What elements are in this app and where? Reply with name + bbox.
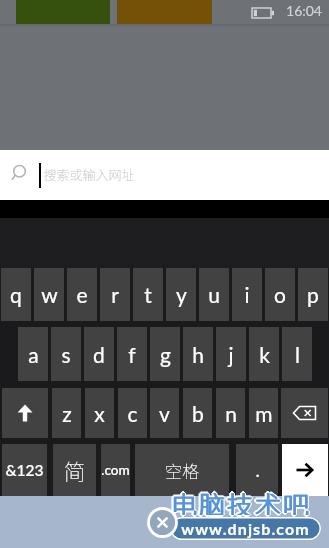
staticText: b (192, 401, 204, 426)
staticText: 电脑技术吧 (168, 485, 309, 515)
staticText: 电脑技术吧 (171, 484, 312, 514)
staticText: f (128, 342, 136, 367)
staticText: 电脑技术吧 (170, 485, 311, 515)
staticText: s (61, 342, 71, 367)
staticText: www.dnjsb.com (181, 519, 310, 538)
staticText: o (274, 282, 286, 307)
staticText: 电脑技术吧 (172, 485, 313, 515)
staticText: d (93, 342, 105, 367)
staticText: 电脑技术吧 (170, 487, 311, 517)
staticText: l (295, 342, 300, 367)
staticText: 电脑技术吧 (169, 486, 310, 516)
staticText: 电脑技术吧 (170, 483, 311, 513)
staticText: c (127, 401, 138, 426)
staticText: u (208, 282, 220, 307)
staticText: r (111, 282, 119, 307)
staticText: 电脑技术吧 (171, 485, 312, 515)
staticText: 电脑技术吧 (171, 486, 312, 516)
staticText: 简 (63, 454, 86, 486)
staticText: . (255, 459, 260, 481)
staticText: j (228, 342, 234, 367)
staticText: y (176, 282, 187, 307)
staticText: 搜索或输入网址 (43, 165, 135, 184)
staticText: a (28, 342, 39, 367)
staticText: k (259, 342, 270, 367)
staticText: n (225, 401, 237, 426)
staticText: 电脑技术吧 (169, 484, 310, 514)
staticText: i (244, 282, 250, 307)
staticText: q (10, 282, 22, 307)
staticText: t (144, 282, 152, 307)
staticText: &123 (5, 461, 44, 480)
staticText: w (41, 282, 58, 307)
staticText: z (62, 401, 72, 426)
staticText: m (255, 401, 273, 426)
staticText: e (76, 282, 88, 307)
staticText: h (192, 342, 204, 367)
staticText: v (159, 401, 170, 426)
staticText: p (307, 282, 319, 307)
staticText: 16:04 (286, 2, 322, 19)
staticText: .com (101, 462, 130, 478)
staticText: 空格 (165, 458, 199, 483)
staticText: x (94, 401, 105, 426)
staticText: g (160, 342, 171, 367)
